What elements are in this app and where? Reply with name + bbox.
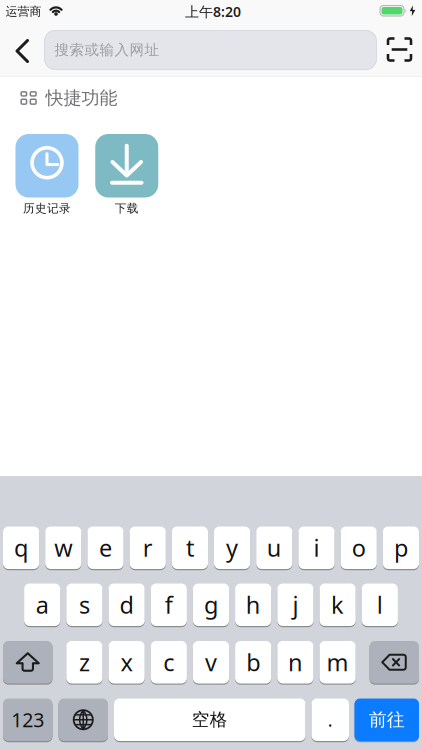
button[interactable]: l bbox=[362, 582, 398, 627]
staticText: 历史记录 bbox=[23, 201, 71, 216]
button[interactable]: d bbox=[108, 582, 145, 627]
button[interactable]: t bbox=[172, 525, 208, 570]
button[interactable]: . bbox=[311, 697, 349, 742]
button[interactable]: 前往 bbox=[354, 697, 419, 742]
button[interactable]: o bbox=[341, 525, 377, 570]
button[interactable]: f bbox=[151, 582, 187, 627]
button[interactable]: 历史记录 bbox=[7, 128, 87, 218]
staticText: d bbox=[120, 589, 134, 621]
staticText: i bbox=[313, 532, 319, 564]
staticText: j bbox=[292, 589, 298, 621]
staticText: 搜索或输入网址 bbox=[54, 41, 159, 59]
staticText: b bbox=[246, 646, 260, 678]
staticText: x bbox=[121, 646, 133, 678]
staticText: 运营商 bbox=[5, 4, 41, 19]
staticText: 空格 bbox=[192, 709, 228, 731]
button[interactable]: h bbox=[235, 582, 271, 627]
button[interactable]: Shift bbox=[3, 640, 52, 684]
button[interactable]: u bbox=[256, 525, 292, 570]
button[interactable]: j bbox=[277, 582, 313, 627]
button[interactable]: 切换输入法 bbox=[58, 697, 108, 742]
button[interactable]: x bbox=[108, 640, 145, 684]
staticText: . bbox=[328, 707, 333, 732]
button[interactable]: s bbox=[66, 582, 102, 627]
staticText: u bbox=[267, 532, 282, 564]
button[interactable]: q bbox=[3, 525, 39, 570]
staticText: 前往 bbox=[369, 708, 405, 731]
staticText: l bbox=[377, 589, 383, 621]
staticText: a bbox=[36, 589, 49, 621]
staticText: 上午8:20 bbox=[185, 2, 241, 21]
button[interactable]: b bbox=[235, 640, 271, 684]
staticText: p bbox=[394, 532, 408, 564]
staticText: 下载 bbox=[115, 201, 139, 216]
staticText: c bbox=[163, 646, 174, 678]
button[interactable]: n bbox=[277, 640, 313, 684]
button[interactable]: 扫一扫 bbox=[384, 34, 414, 64]
staticText: y bbox=[226, 532, 238, 564]
staticText: g bbox=[204, 589, 218, 621]
staticText: v bbox=[205, 646, 217, 678]
staticText: w bbox=[54, 532, 72, 564]
staticText: e bbox=[99, 532, 112, 564]
staticText: q bbox=[14, 532, 28, 564]
staticText: 123 bbox=[11, 706, 44, 733]
staticText: h bbox=[246, 589, 261, 621]
button[interactable]: 下载 bbox=[87, 128, 167, 218]
button[interactable]: p bbox=[383, 525, 419, 570]
button[interactable]: y bbox=[214, 525, 250, 570]
staticText: o bbox=[352, 532, 366, 564]
button[interactable]: z bbox=[66, 640, 102, 684]
staticText: n bbox=[288, 646, 303, 678]
button[interactable]: i bbox=[298, 525, 335, 570]
staticText: k bbox=[331, 589, 344, 621]
button[interactable]: a bbox=[24, 582, 60, 627]
button[interactable]: 空格 bbox=[114, 697, 305, 742]
button[interactable]: r bbox=[130, 525, 166, 570]
button[interactable]: 返回 bbox=[7, 34, 37, 68]
button[interactable]: g bbox=[193, 582, 229, 627]
button[interactable]: m bbox=[319, 640, 356, 684]
staticText: z bbox=[79, 646, 90, 678]
button[interactable]: w bbox=[45, 525, 81, 570]
button[interactable]: v bbox=[193, 640, 229, 684]
button[interactable]: c bbox=[151, 640, 187, 684]
button[interactable]: 搜索或输入网址 bbox=[44, 30, 377, 70]
staticText: f bbox=[165, 589, 173, 621]
staticText: m bbox=[327, 646, 349, 678]
button[interactable]: e bbox=[87, 525, 124, 570]
button[interactable]: 删除 bbox=[369, 640, 419, 684]
button[interactable]: 123 bbox=[3, 697, 52, 742]
staticText: 快捷功能 bbox=[45, 87, 117, 109]
staticText: t bbox=[186, 532, 194, 564]
staticText: s bbox=[79, 589, 90, 621]
staticText: r bbox=[143, 532, 153, 564]
button[interactable]: k bbox=[319, 582, 356, 627]
